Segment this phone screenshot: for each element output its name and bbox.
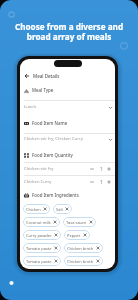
staticText: Salt [56, 207, 63, 212]
button[interactable]: Tava sauce [63, 217, 96, 227]
button[interactable]: Lunch [24, 102, 115, 112]
staticText: Meal Type [32, 87, 54, 93]
staticText: Food Item Name [32, 120, 68, 126]
staticText: Chicken broth [67, 259, 94, 264]
button[interactable]: Increase [106, 166, 112, 172]
staticText: Pepper [67, 233, 81, 238]
staticText: Tomato paste [26, 246, 52, 251]
other: Back [24, 73, 30, 79]
button[interactable]: Curry powder [23, 230, 61, 240]
button[interactable]: Back [24, 71, 60, 81]
staticText: 1 [100, 179, 103, 185]
staticText: Chicken stir fry, Chicken Curry [24, 136, 83, 142]
button[interactable]: Salt [53, 204, 72, 214]
staticText: Meal Details [33, 73, 60, 79]
button[interactable]: Decrease [89, 166, 95, 172]
staticText: Choose from a diverse and broad array of… [0, 21, 138, 43]
button[interactable]: Chicken broth [64, 256, 103, 266]
button[interactable]: Pepper [64, 230, 90, 240]
button[interactable]: Tomato paste [23, 256, 61, 266]
staticText: Chicken [26, 207, 41, 212]
staticText: Curry powder [26, 233, 52, 238]
button[interactable]: Chicken stir fry, Chicken Curry [24, 134, 115, 144]
staticText: Lunch [24, 104, 36, 110]
button[interactable]: Coconut milk [23, 217, 60, 227]
staticText: Chicken Curry [24, 179, 52, 185]
staticText: Tava sauce [66, 220, 87, 225]
button[interactable]: Chicken broth [64, 243, 103, 253]
staticText: Food Item Quantity [32, 152, 73, 158]
button[interactable]: Decrease [89, 179, 95, 185]
staticText: 1 [100, 166, 103, 172]
staticText: Food Item Ingredients [32, 192, 79, 198]
staticText: Tomato paste [26, 259, 52, 264]
staticText: Coconut milk [26, 220, 51, 225]
button[interactable]: Increase [106, 179, 112, 185]
staticText: Chicken stir fry [24, 166, 54, 172]
button[interactable]: Tomato paste [23, 243, 61, 253]
button[interactable]: Chicken [23, 204, 50, 214]
staticText: Chicken broth [67, 246, 94, 251]
